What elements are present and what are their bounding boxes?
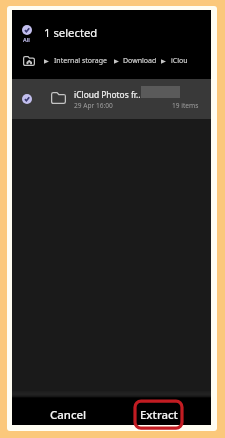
staticText: Internal storage: [54, 56, 107, 66]
staticText: 19 items: [172, 101, 199, 110]
staticText: All: [23, 36, 30, 44]
button[interactable]: Cancel: [18, 398, 118, 425]
button[interactable]: Download: [123, 56, 157, 66]
staticText: Download: [123, 56, 157, 66]
staticText: Extract: [140, 407, 178, 423]
staticText: iClou: [171, 56, 188, 66]
button[interactable]: Home folder: [23, 55, 35, 66]
button[interactable]: iCloud Photos fr...: [12, 79, 211, 119]
staticText: 29 Apr 16:00: [74, 101, 113, 110]
staticText: Cancel: [50, 407, 87, 423]
staticText: 1 selected: [44, 25, 98, 40]
button[interactable]: Extract: [107, 398, 210, 425]
staticText: iCloud Photos fr...: [74, 89, 143, 100]
button[interactable]: Select all: [16, 25, 37, 44]
button[interactable]: Internal storage: [54, 56, 107, 66]
button[interactable]: iClou: [171, 56, 188, 66]
